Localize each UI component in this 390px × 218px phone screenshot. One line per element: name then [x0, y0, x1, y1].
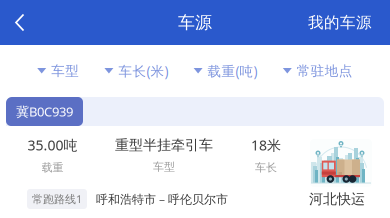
staticText: 常驻地点 [297, 62, 353, 79]
staticText: 车源 [178, 12, 212, 33]
button[interactable]: Back [0, 0, 40, 45]
button[interactable]: 我的车源 [290, 0, 390, 45]
staticText: 我的车源 [308, 13, 372, 32]
staticText: 载重 [41, 161, 63, 174]
button[interactable]: 载重(吨) [192, 54, 260, 88]
button[interactable]: 常驻地点 [281, 54, 355, 87]
staticText: 呼和浩特市 – 呼伦贝尔市 [96, 191, 228, 207]
staticText: 冀B0C939 [16, 103, 73, 120]
button[interactable]: 车型 [35, 54, 81, 87]
staticText: 河北快运 [309, 190, 365, 208]
staticText: 35.00吨 [27, 135, 77, 155]
staticText: 常跑路线1 [32, 191, 82, 206]
staticText: 车长(米) [118, 62, 168, 80]
staticText: 重型半挂牵引车 [115, 136, 213, 154]
staticText: 车型 [51, 62, 79, 79]
button[interactable]: 车长(米) [102, 54, 170, 88]
staticText: 18米 [251, 135, 281, 155]
staticText: 载重(吨) [208, 62, 258, 80]
staticText: 车长 [255, 161, 277, 174]
staticText: 车型 [153, 160, 175, 174]
